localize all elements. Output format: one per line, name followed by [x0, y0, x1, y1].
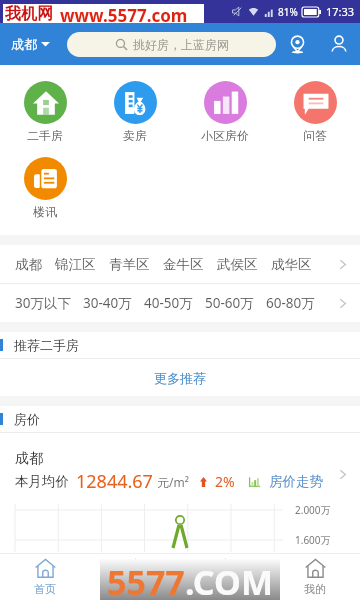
staticText: 30-40万 [83, 294, 132, 312]
staticText: 81% [278, 5, 298, 19]
staticText: 资讯 [214, 582, 236, 596]
button[interactable]: 首页 [0, 554, 90, 600]
button[interactable]: 找房 [90, 554, 180, 600]
staticText: 青羊区 [109, 256, 150, 273]
staticText: 40-50万 [144, 294, 193, 312]
button[interactable]: Profile [318, 23, 360, 65]
staticText: 房价 [14, 411, 40, 427]
staticText: 金牛区 [163, 256, 204, 273]
staticText: 成华区 [271, 256, 312, 273]
staticText: 挑好房，上蓝房网 [133, 37, 229, 52]
staticText: 我的 [304, 582, 326, 596]
staticText: 推荐二手房 [14, 337, 79, 353]
staticText: 30万以下 [15, 294, 71, 312]
button[interactable]: Location [276, 23, 318, 65]
staticText: 成都 [15, 450, 43, 468]
button[interactable]: 小区房价 [180, 65, 270, 141]
staticText: 12844.67 [76, 469, 153, 494]
button[interactable]: 30万以下 [0, 284, 360, 322]
button[interactable]: 挑好房，上蓝房网 [67, 32, 276, 57]
staticText: www.5577.com [60, 4, 188, 24]
staticText: 5577 [107, 559, 185, 600]
staticText: 问答 [303, 128, 327, 141]
button[interactable]: 成都 [0, 23, 67, 65]
staticText: 我机网 [5, 4, 53, 24]
staticText: 首页 [34, 582, 56, 596]
button[interactable]: 卖房 [90, 65, 180, 141]
button[interactable]: 成都 [0, 245, 360, 283]
staticText: 二手房 [27, 128, 63, 141]
staticText: 更多推荐 [154, 370, 206, 386]
button[interactable]: 我的 [270, 554, 360, 600]
button[interactable]: 楼讯 [0, 141, 90, 235]
staticText: 1.600万 [295, 533, 331, 547]
staticText: 50-60万 [205, 294, 254, 312]
staticText: 武侯区 [217, 256, 258, 273]
staticText: 找房 [124, 582, 146, 596]
staticText: 房价走势 [269, 473, 323, 490]
button[interactable]: 问答 [270, 65, 360, 141]
staticText: 楼讯 [33, 204, 57, 219]
staticText: 60-80万 [266, 294, 315, 312]
staticText: 卖房 [123, 128, 147, 141]
staticText: 2.000万 [295, 503, 331, 517]
staticText: 成都 [11, 36, 37, 52]
staticText: 成都 [15, 256, 42, 273]
staticText: 本月均价 [15, 473, 69, 490]
staticText: 元/m² [157, 474, 189, 490]
staticText: 小区房价 [201, 128, 249, 141]
staticText: .COM [185, 559, 273, 600]
button[interactable]: 更多推荐 [0, 359, 360, 396]
button[interactable]: 资讯 [180, 554, 270, 600]
staticText: 17:33 [326, 4, 355, 19]
staticText: 2% [215, 472, 235, 491]
staticText: 锦江区 [55, 256, 96, 273]
button[interactable]: 二手房 [0, 65, 90, 141]
